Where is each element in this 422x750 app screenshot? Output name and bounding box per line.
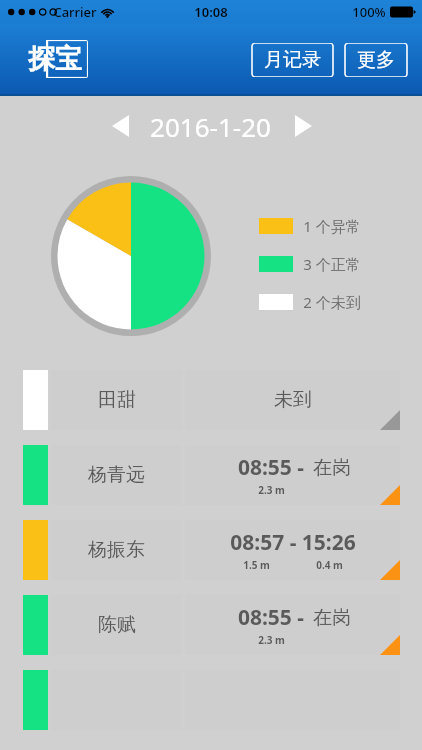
button[interactable] [23, 670, 400, 730]
staticText: Carrier [53, 3, 97, 21]
staticText: 在岗 [313, 456, 351, 480]
staticText: 杨振东 [88, 538, 145, 562]
button[interactable]: 陈赋 [23, 595, 400, 655]
staticText: 未到 [274, 388, 312, 412]
button[interactable]: Previous day [100, 106, 140, 146]
staticText: 3 个正常 [303, 254, 361, 274]
staticText: 100% [352, 3, 386, 21]
staticText: 月记录 [264, 48, 321, 72]
staticText: 08:55 - [235, 603, 307, 632]
staticText: 田甜 [98, 388, 136, 412]
button[interactable]: 田甜 [23, 370, 400, 430]
staticText: 10:08 [194, 3, 228, 21]
button[interactable]: 月记录 [251, 43, 334, 77]
staticText: 08:55 - [235, 453, 307, 482]
staticText: 2 个未到 [303, 292, 361, 312]
staticText: 1.5 m [243, 558, 270, 572]
staticText: 08:57 - 15:26 [230, 528, 356, 557]
staticText: 1 个异常 [303, 216, 361, 236]
staticText: 陈赋 [98, 613, 136, 637]
staticText: 更多 [357, 48, 395, 72]
staticText: 2016-1-20 [150, 109, 271, 144]
staticText: 2.3 m [258, 483, 285, 497]
staticText: 杨青远 [88, 463, 145, 487]
button[interactable]: 杨青远 [23, 445, 400, 505]
staticText: 探宝 [28, 42, 82, 76]
button[interactable]: Next day [283, 106, 323, 146]
button[interactable]: 探宝 [22, 40, 88, 78]
button[interactable]: 杨振东 [23, 520, 400, 580]
staticText: 在岗 [313, 606, 351, 630]
button[interactable]: 更多 [344, 43, 408, 77]
staticText: 2.3 m [258, 633, 285, 647]
staticText: 0.4 m [316, 558, 343, 572]
